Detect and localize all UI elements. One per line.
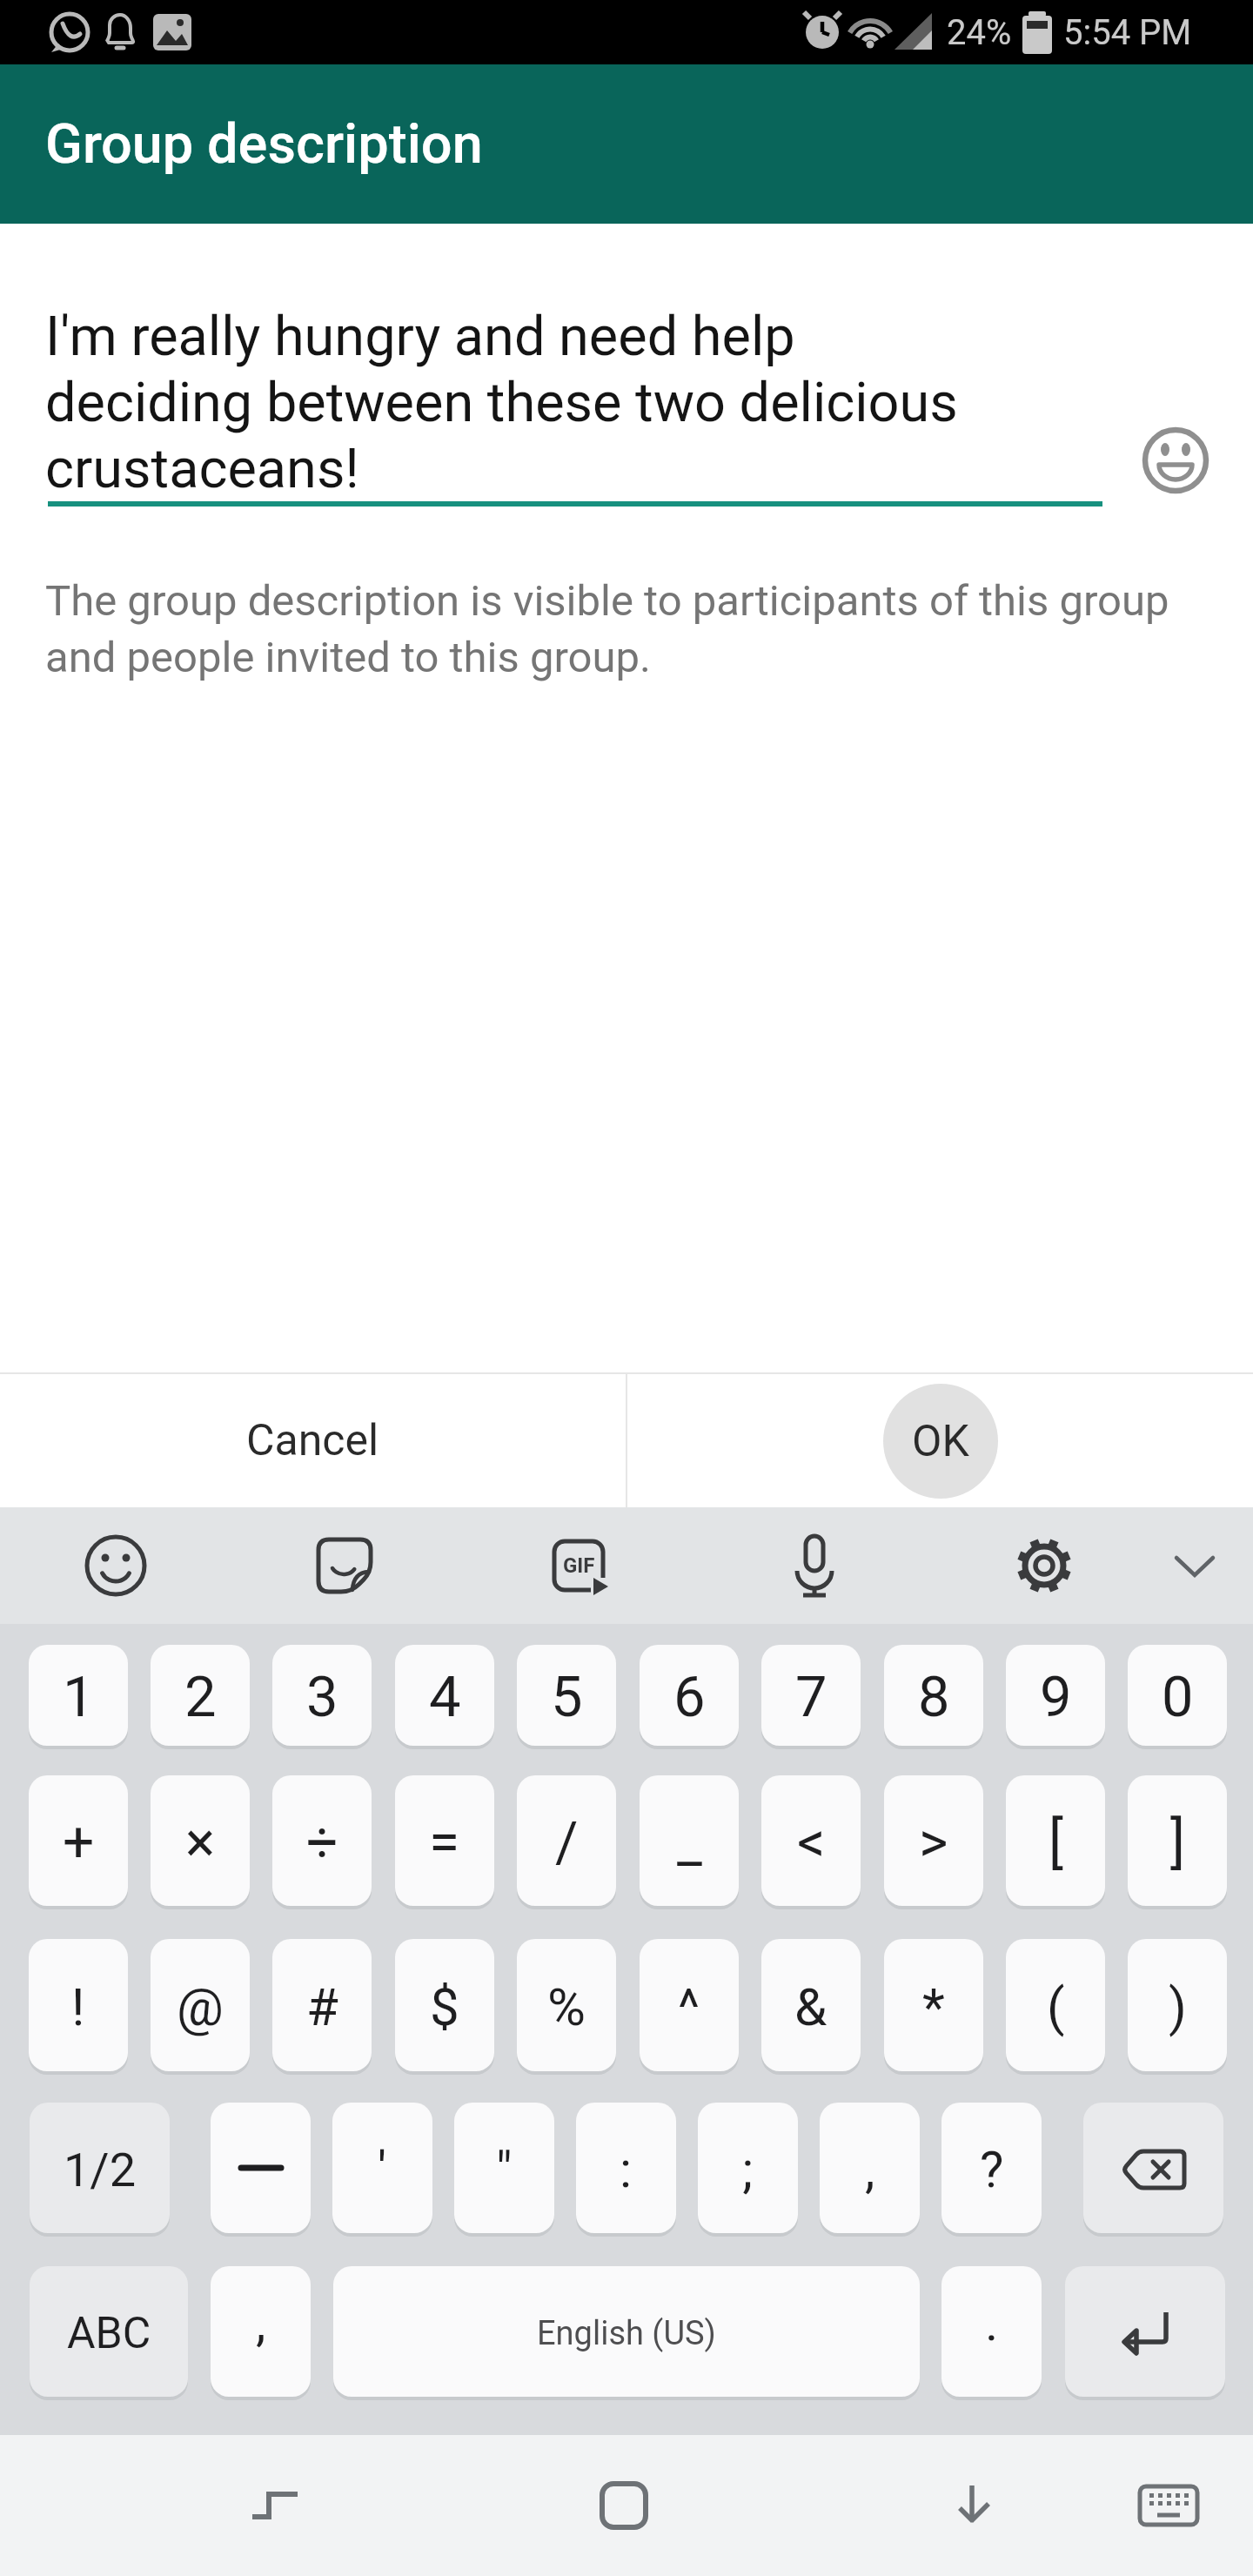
button[interactable]: Cancel [0,1374,626,1507]
button[interactable]: " [454,2103,554,2237]
staticText: 7 [795,1664,828,1730]
staticText: . [985,2293,999,2352]
button[interactable]: % [517,1939,616,2075]
staticText: Group description [45,112,483,177]
button[interactable]: ) [1128,1939,1227,2075]
button[interactable] [301,1522,388,1609]
button[interactable] [231,2462,318,2549]
staticText: * [922,1976,945,2037]
staticText: The group description is visible to part… [45,576,1169,682]
staticText: 3 [306,1664,338,1730]
button[interactable]: : [576,2103,676,2237]
button[interactable]: # [272,1939,372,2075]
button[interactable]: 8 [884,1645,983,1749]
staticText: ! [71,1976,85,2037]
staticText: ( [1047,1976,1065,2037]
staticText: & [794,1976,828,2037]
button[interactable]: ( [1006,1939,1105,2075]
button[interactable]: 1 [29,1645,128,1749]
button[interactable]: 2 [151,1645,250,1749]
button[interactable] [580,2462,667,2549]
staticText: : [620,2140,633,2199]
staticText: ÷ [306,1810,338,1875]
button[interactable]: / [517,1775,616,1909]
button[interactable]: 3 [272,1645,372,1749]
staticText: $ [430,1976,459,2037]
button[interactable]: 0 [1128,1645,1227,1749]
button[interactable]: 6 [640,1645,739,1749]
staticText: Cancel [246,1415,379,1466]
staticText: , [865,2140,875,2199]
staticText: 1 [63,1664,95,1730]
staticText: ] [1170,1810,1185,1875]
staticText: ^ [678,1976,700,2037]
button[interactable]: 4 [395,1645,494,1749]
staticText: > [919,1810,948,1875]
staticText: 5:54 PM [1063,12,1192,53]
button[interactable]: ; [698,2103,798,2237]
button[interactable]: ÷ [272,1775,372,1909]
button[interactable]: [ [1006,1775,1105,1909]
staticText: ABC [67,2308,151,2359]
button[interactable] [1001,1522,1088,1609]
staticText: ) [1169,1976,1187,2037]
button[interactable]: < [761,1775,861,1909]
button[interactable]: , [820,2103,920,2237]
button[interactable]: ] [1128,1775,1227,1909]
button[interactable]: OK [883,1384,998,1499]
button[interactable]: ! [29,1939,128,2075]
button[interactable]: @ [151,1939,250,2075]
button[interactable] [930,2462,1017,2549]
button[interactable] [1125,2462,1212,2549]
staticText: 9 [1040,1664,1072,1730]
staticText: GIF [563,1553,595,1578]
staticText: 8 [918,1664,950,1730]
button[interactable]: = [395,1775,494,1909]
button[interactable]: $ [395,1939,494,2075]
button[interactable] [1140,425,1211,496]
button[interactable]: ABC [30,2266,188,2400]
staticText: % [547,1976,586,2037]
button[interactable]: English (US) [333,2266,920,2400]
staticText: 0 [1162,1664,1194,1730]
staticText: 5 [551,1664,583,1730]
button[interactable]: + [29,1775,128,1909]
staticText: ? [980,2140,1004,2199]
button[interactable]: , [211,2266,311,2400]
button[interactable] [211,2103,311,2237]
staticText: I'm really hungry and need help deciding… [45,305,958,501]
button[interactable]: & [761,1939,861,2075]
button[interactable] [72,1522,159,1609]
staticText: ' [378,2140,387,2199]
button[interactable]: . [941,2266,1042,2400]
button[interactable]: × [151,1775,250,1909]
button[interactable] [771,1522,858,1609]
staticText: 4 [429,1664,461,1730]
button[interactable] [1151,1522,1238,1609]
staticText: English (US) [537,2314,716,2353]
staticText: " [496,2140,513,2199]
button[interactable]: 9 [1006,1645,1105,1749]
button[interactable]: _ [640,1775,739,1909]
staticText: 1/2 [64,2143,136,2197]
staticText: @ [177,1976,224,2037]
staticText: < [797,1810,826,1875]
button[interactable]: 1/2 [30,2103,170,2237]
staticText: × [185,1810,216,1875]
staticText: = [429,1810,460,1875]
button[interactable]: ^ [640,1939,739,2075]
button[interactable]: GIF [535,1522,622,1609]
button[interactable] [1083,2103,1223,2237]
button[interactable]: 7 [761,1645,861,1749]
button[interactable]: > [884,1775,983,1909]
button[interactable]: ' [332,2103,432,2237]
button[interactable]: 5 [517,1645,616,1749]
button[interactable] [1065,2266,1225,2400]
staticText: _ [677,1810,702,1875]
button[interactable]: * [884,1939,983,2075]
staticText: # [306,1976,338,2037]
button[interactable]: ? [941,2103,1042,2237]
staticText: 2 [184,1664,217,1730]
staticText: + [63,1810,95,1875]
staticText: ; [742,2140,754,2199]
